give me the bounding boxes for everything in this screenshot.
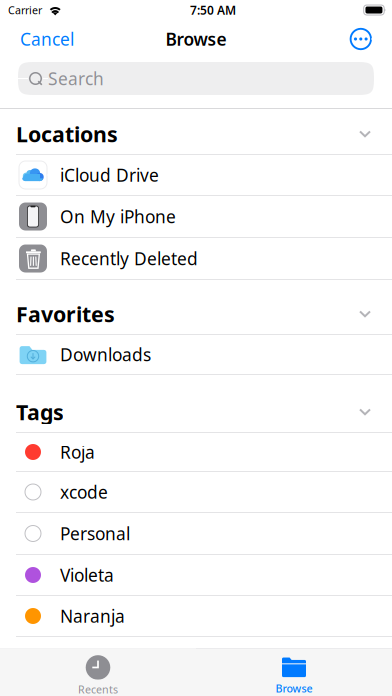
staticText: Browse	[275, 681, 312, 696]
button[interactable]: Browse	[196, 649, 392, 696]
button[interactable]: Recents	[0, 649, 196, 696]
button[interactable]: Violeta	[0, 555, 392, 596]
staticText: Naranja	[60, 604, 125, 627]
button[interactable]: Naranja	[0, 596, 392, 637]
button[interactable]: xcode	[0, 472, 392, 513]
staticText: Personal	[60, 522, 130, 545]
staticText: Locations	[16, 120, 118, 148]
staticText: xcode	[60, 480, 108, 503]
button[interactable]: Favorites	[0, 280, 392, 335]
button[interactable]: More	[341, 20, 392, 58]
button[interactable]: Personal	[0, 513, 392, 555]
staticText: iCloud Drive	[60, 163, 159, 186]
button[interactable]: Locations	[0, 109, 392, 155]
button[interactable]: Recently Deleted	[0, 238, 392, 280]
staticText: Cancel	[20, 27, 74, 50]
button[interactable]: Tags	[0, 375, 392, 433]
button[interactable]: Search	[18, 62, 374, 95]
staticText: On My iPhone	[60, 205, 176, 228]
staticText: Browse	[165, 27, 226, 50]
staticText: Tags	[16, 398, 64, 426]
staticText: Search	[48, 67, 104, 90]
button[interactable]: Roja	[0, 433, 392, 472]
staticText: Favorites	[16, 300, 115, 328]
staticText: Downloads	[60, 343, 151, 366]
staticText: Recents	[78, 682, 118, 696]
staticText: 7:50 AM	[190, 2, 236, 18]
button[interactable]: Downloads	[0, 335, 392, 375]
staticText: Roja	[60, 440, 95, 463]
staticText: Recently Deleted	[60, 247, 198, 270]
button[interactable]: iCloud Drive	[0, 155, 392, 196]
button[interactable]: On My iPhone	[0, 196, 392, 238]
staticText: Violeta	[60, 563, 114, 586]
staticText: Carrier	[8, 3, 42, 17]
button[interactable]: Cancel	[0, 20, 84, 58]
